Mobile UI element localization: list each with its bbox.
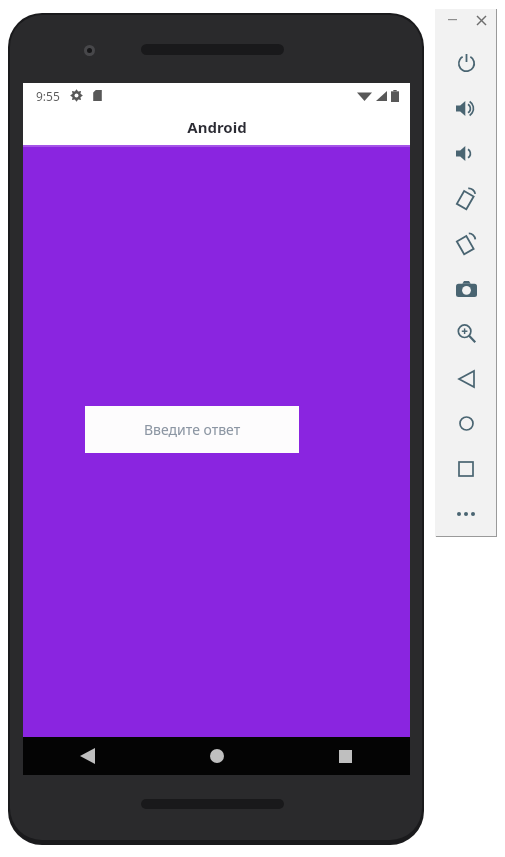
button[interactable]: Minimize [441,10,463,30]
button[interactable]: Home [435,401,497,446]
button[interactable]: Close [470,10,492,30]
button[interactable]: Home [152,737,281,775]
staticText: Android [187,117,247,137]
button[interactable]: Recent apps [281,737,410,775]
button[interactable]: Rotate left [435,176,497,221]
button[interactable]: Take screenshot [435,266,497,311]
button[interactable]: Overview [435,446,497,491]
button[interactable]: Volume up [435,86,497,131]
button[interactable]: Volume down [435,131,497,176]
button[interactable]: Введите ответ [85,406,299,453]
button[interactable]: Power [435,41,497,86]
staticText: Введите ответ [144,420,241,439]
button[interactable]: More [435,491,497,536]
button[interactable]: Back [23,737,152,775]
button[interactable]: Rotate right [435,221,497,266]
staticText: 9:55 [36,88,60,104]
button[interactable]: Back [435,356,497,401]
button[interactable]: Zoom [435,311,497,356]
